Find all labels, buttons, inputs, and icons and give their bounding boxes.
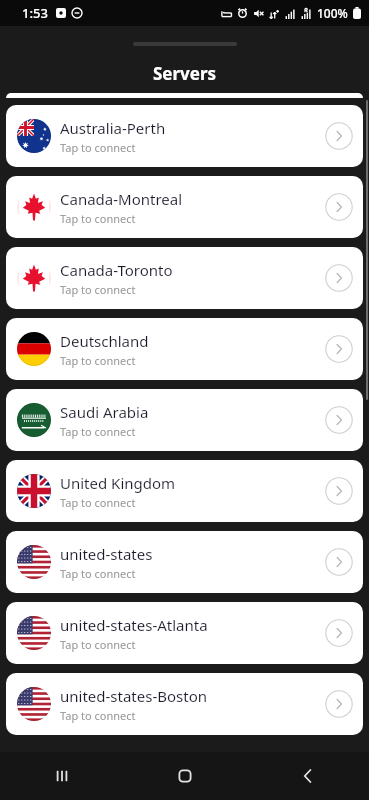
other: Connect to Canada-Montreal (325, 193, 353, 221)
button[interactable]: Canada-Toronto (6, 247, 363, 309)
staticText: Deutschland (60, 331, 149, 351)
staticText: Tap to connect (60, 353, 136, 368)
button[interactable]: Canada-Montreal (6, 176, 363, 238)
button[interactable]: united-states-Atlanta (6, 602, 363, 664)
button[interactable]: Saudi Arabia (6, 389, 363, 451)
other: Connect to united-states-Boston (325, 690, 353, 718)
staticText: Tap to connect (60, 424, 136, 439)
other: Connect to united-states (325, 548, 353, 576)
other: Connect to Saudi Arabia (325, 406, 353, 434)
other: Connect to united-states-Atlanta (325, 619, 353, 647)
staticText: Australia-Perth (60, 118, 166, 138)
other: Connect to Canada-Toronto (325, 264, 353, 292)
staticText: United Kingdom (60, 473, 176, 493)
staticText: Tap to connect (60, 637, 136, 652)
button[interactable]: Deutschland (6, 318, 363, 380)
button[interactable]: Australia-Perth (6, 105, 363, 167)
staticText: united-states (60, 544, 153, 564)
button[interactable]: United Kingdom (6, 460, 363, 522)
button[interactable]: Back (246, 752, 369, 800)
staticText: Tap to connect (60, 140, 136, 155)
other: Connect to United Kingdom (325, 477, 353, 505)
staticText: Canada-Toronto (60, 260, 173, 280)
button[interactable]: Home (123, 752, 246, 800)
button[interactable]: united-states-Boston (6, 673, 363, 735)
staticText: united-states-Boston (60, 686, 208, 706)
staticText: 1:53 (22, 4, 48, 22)
staticText: Tap to connect (60, 708, 136, 723)
other: Connect to Deutschland (325, 335, 353, 363)
staticText: united-states-Atlanta (60, 615, 208, 635)
staticText: Tap to connect (60, 566, 136, 581)
staticText: Servers (153, 62, 217, 85)
staticText: Saudi Arabia (60, 402, 149, 422)
staticText: Tap to connect (60, 495, 136, 510)
staticText: Canada-Montreal (60, 189, 183, 209)
staticText: 100% (317, 5, 348, 21)
button[interactable]: Recent apps (0, 752, 123, 800)
staticText: Tap to connect (60, 211, 136, 226)
button[interactable]: united-states (6, 531, 363, 593)
staticText: Tap to connect (60, 282, 136, 297)
other: Connect to Australia-Perth (325, 122, 353, 150)
